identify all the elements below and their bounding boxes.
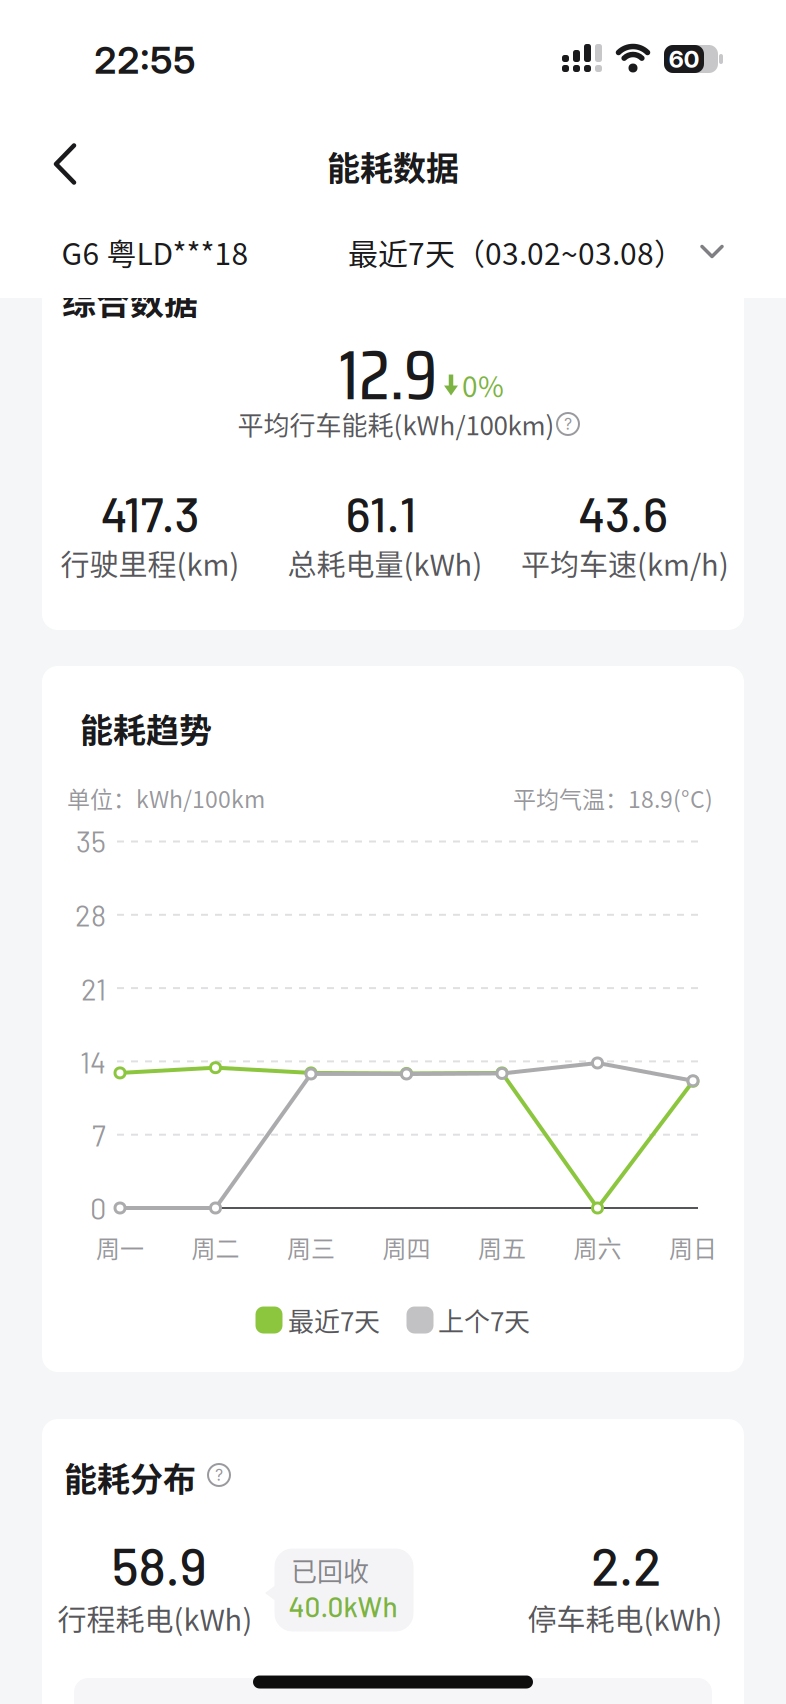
staticText: 14: [80, 1045, 106, 1079]
staticText: 0: [90, 1191, 106, 1225]
staticText: 21: [81, 972, 106, 1006]
staticText: 能耗趋势: [80, 704, 212, 752]
staticText: G6 粤LD***18: [61, 230, 248, 274]
button[interactable]: 选择车辆: [61, 230, 248, 274]
staticText: 行程耗电(kWh): [57, 1597, 252, 1639]
staticText: 12.9: [339, 320, 437, 430]
staticText: 61.1: [345, 484, 416, 542]
staticText: 最近7天: [288, 1301, 380, 1339]
button[interactable]: 说明: [556, 412, 580, 436]
staticText: 周四: [382, 1230, 430, 1264]
staticText: 已回收: [291, 1551, 369, 1589]
staticText: 综合数据: [62, 275, 198, 325]
staticText: 总耗电量(kWh): [287, 542, 482, 584]
staticText: 周二: [191, 1230, 239, 1264]
staticText: 周六: [573, 1230, 621, 1264]
staticText: 平均气温：18.9(°C): [513, 781, 713, 815]
staticText: 60: [668, 44, 699, 73]
staticText: 能耗分布: [64, 1453, 196, 1501]
staticText: 2.2: [591, 1534, 661, 1596]
staticText: 0%: [462, 365, 504, 405]
staticText: 能耗数据: [327, 142, 459, 190]
staticText: 40.0kWh: [288, 1589, 397, 1623]
staticText: 平均车速(km/h): [521, 542, 729, 584]
staticText: 上个7天: [438, 1301, 530, 1339]
staticText: ?: [215, 1465, 223, 1485]
button[interactable]: 选择日期范围: [348, 230, 724, 274]
staticText: 周三: [287, 1230, 335, 1264]
staticText: 单位：kWh/100km: [67, 781, 265, 815]
button[interactable]: 说明: [207, 1463, 231, 1487]
staticText: 7: [92, 1118, 106, 1152]
staticText: 58.9: [111, 1534, 206, 1596]
staticText: 22:55: [94, 37, 196, 83]
staticText: 28: [75, 898, 106, 932]
staticText: 周五: [478, 1230, 526, 1264]
staticText: 行驶里程(km): [60, 542, 239, 584]
button[interactable]: Back: [44, 141, 88, 186]
staticText: 停车耗电(kWh): [527, 1597, 722, 1639]
staticText: 417.3: [100, 484, 199, 542]
staticText: ?: [564, 414, 572, 434]
staticText: 最近7天（03.02~03.08）: [348, 230, 684, 274]
staticText: 周日: [669, 1230, 717, 1264]
staticText: 周一: [96, 1230, 144, 1264]
staticText: 平均行车能耗(kWh/100km): [237, 405, 554, 443]
staticText: 35: [76, 824, 106, 858]
staticText: 43.6: [578, 484, 668, 542]
